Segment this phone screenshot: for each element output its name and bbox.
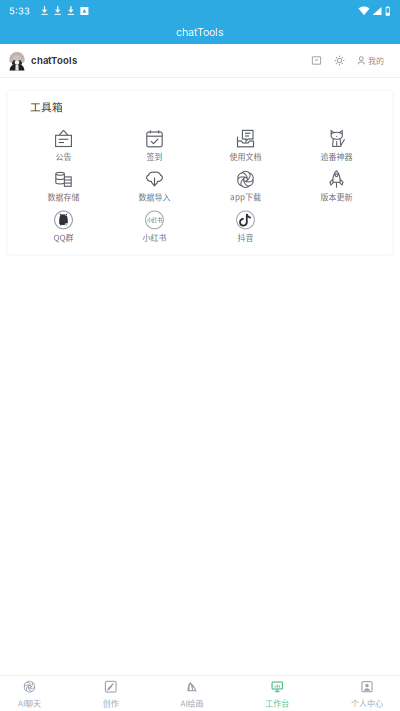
button[interactable]: 追番神器 <box>291 129 382 170</box>
staticText: 追番神器 <box>320 150 352 162</box>
staticText: 5:33 <box>9 5 30 17</box>
staticText: 公告 <box>55 150 71 162</box>
staticText: 签到 <box>146 150 162 162</box>
button[interactable]: 我的 <box>350 49 384 71</box>
staticText: app下载 <box>230 191 261 202</box>
staticText: AI聊天 <box>18 697 41 709</box>
button[interactable]: 使用文档 <box>200 129 291 170</box>
staticText: 小红书 <box>142 231 166 243</box>
button[interactable]: 公告 <box>18 129 109 170</box>
button[interactable]: Settings <box>328 49 350 71</box>
button[interactable]: 数据存储 <box>18 170 109 210</box>
button[interactable]: 抖音 <box>200 210 291 251</box>
button[interactable]: 工作台 <box>265 676 289 711</box>
staticText: 个人中心 <box>351 697 383 709</box>
staticText: 工具箱 <box>30 99 63 114</box>
staticText: 小红书 <box>147 216 162 224</box>
button[interactable]: 数据导入 <box>109 170 200 210</box>
button[interactable]: 签到 <box>109 129 200 170</box>
button[interactable]: 小红书 <box>109 210 200 251</box>
button[interactable]: Messages <box>304 49 328 71</box>
staticText: 数据存储 <box>47 191 79 202</box>
staticText: 抖音 <box>237 231 253 243</box>
staticText: 我的 <box>368 55 384 66</box>
staticText: chatTools <box>176 25 224 38</box>
button[interactable]: 个人中心 <box>351 676 383 711</box>
button[interactable]: QQ群 <box>18 210 109 251</box>
button[interactable]: AI绘画 <box>180 676 203 711</box>
button[interactable]: AI聊天 <box>18 676 41 711</box>
staticText: 使用文档 <box>229 150 261 162</box>
staticText: QQ群 <box>53 231 73 243</box>
staticText: 创作 <box>103 697 119 709</box>
staticText: 版本更新 <box>320 191 352 202</box>
staticText: AI绘画 <box>180 697 203 709</box>
button[interactable]: 创作 <box>103 676 119 711</box>
button[interactable]: 版本更新 <box>291 170 382 210</box>
staticText: 数据导入 <box>138 191 170 202</box>
staticText: chatTools <box>31 55 77 66</box>
button[interactable]: app下载 <box>200 170 291 210</box>
staticText: 工作台 <box>265 697 289 709</box>
